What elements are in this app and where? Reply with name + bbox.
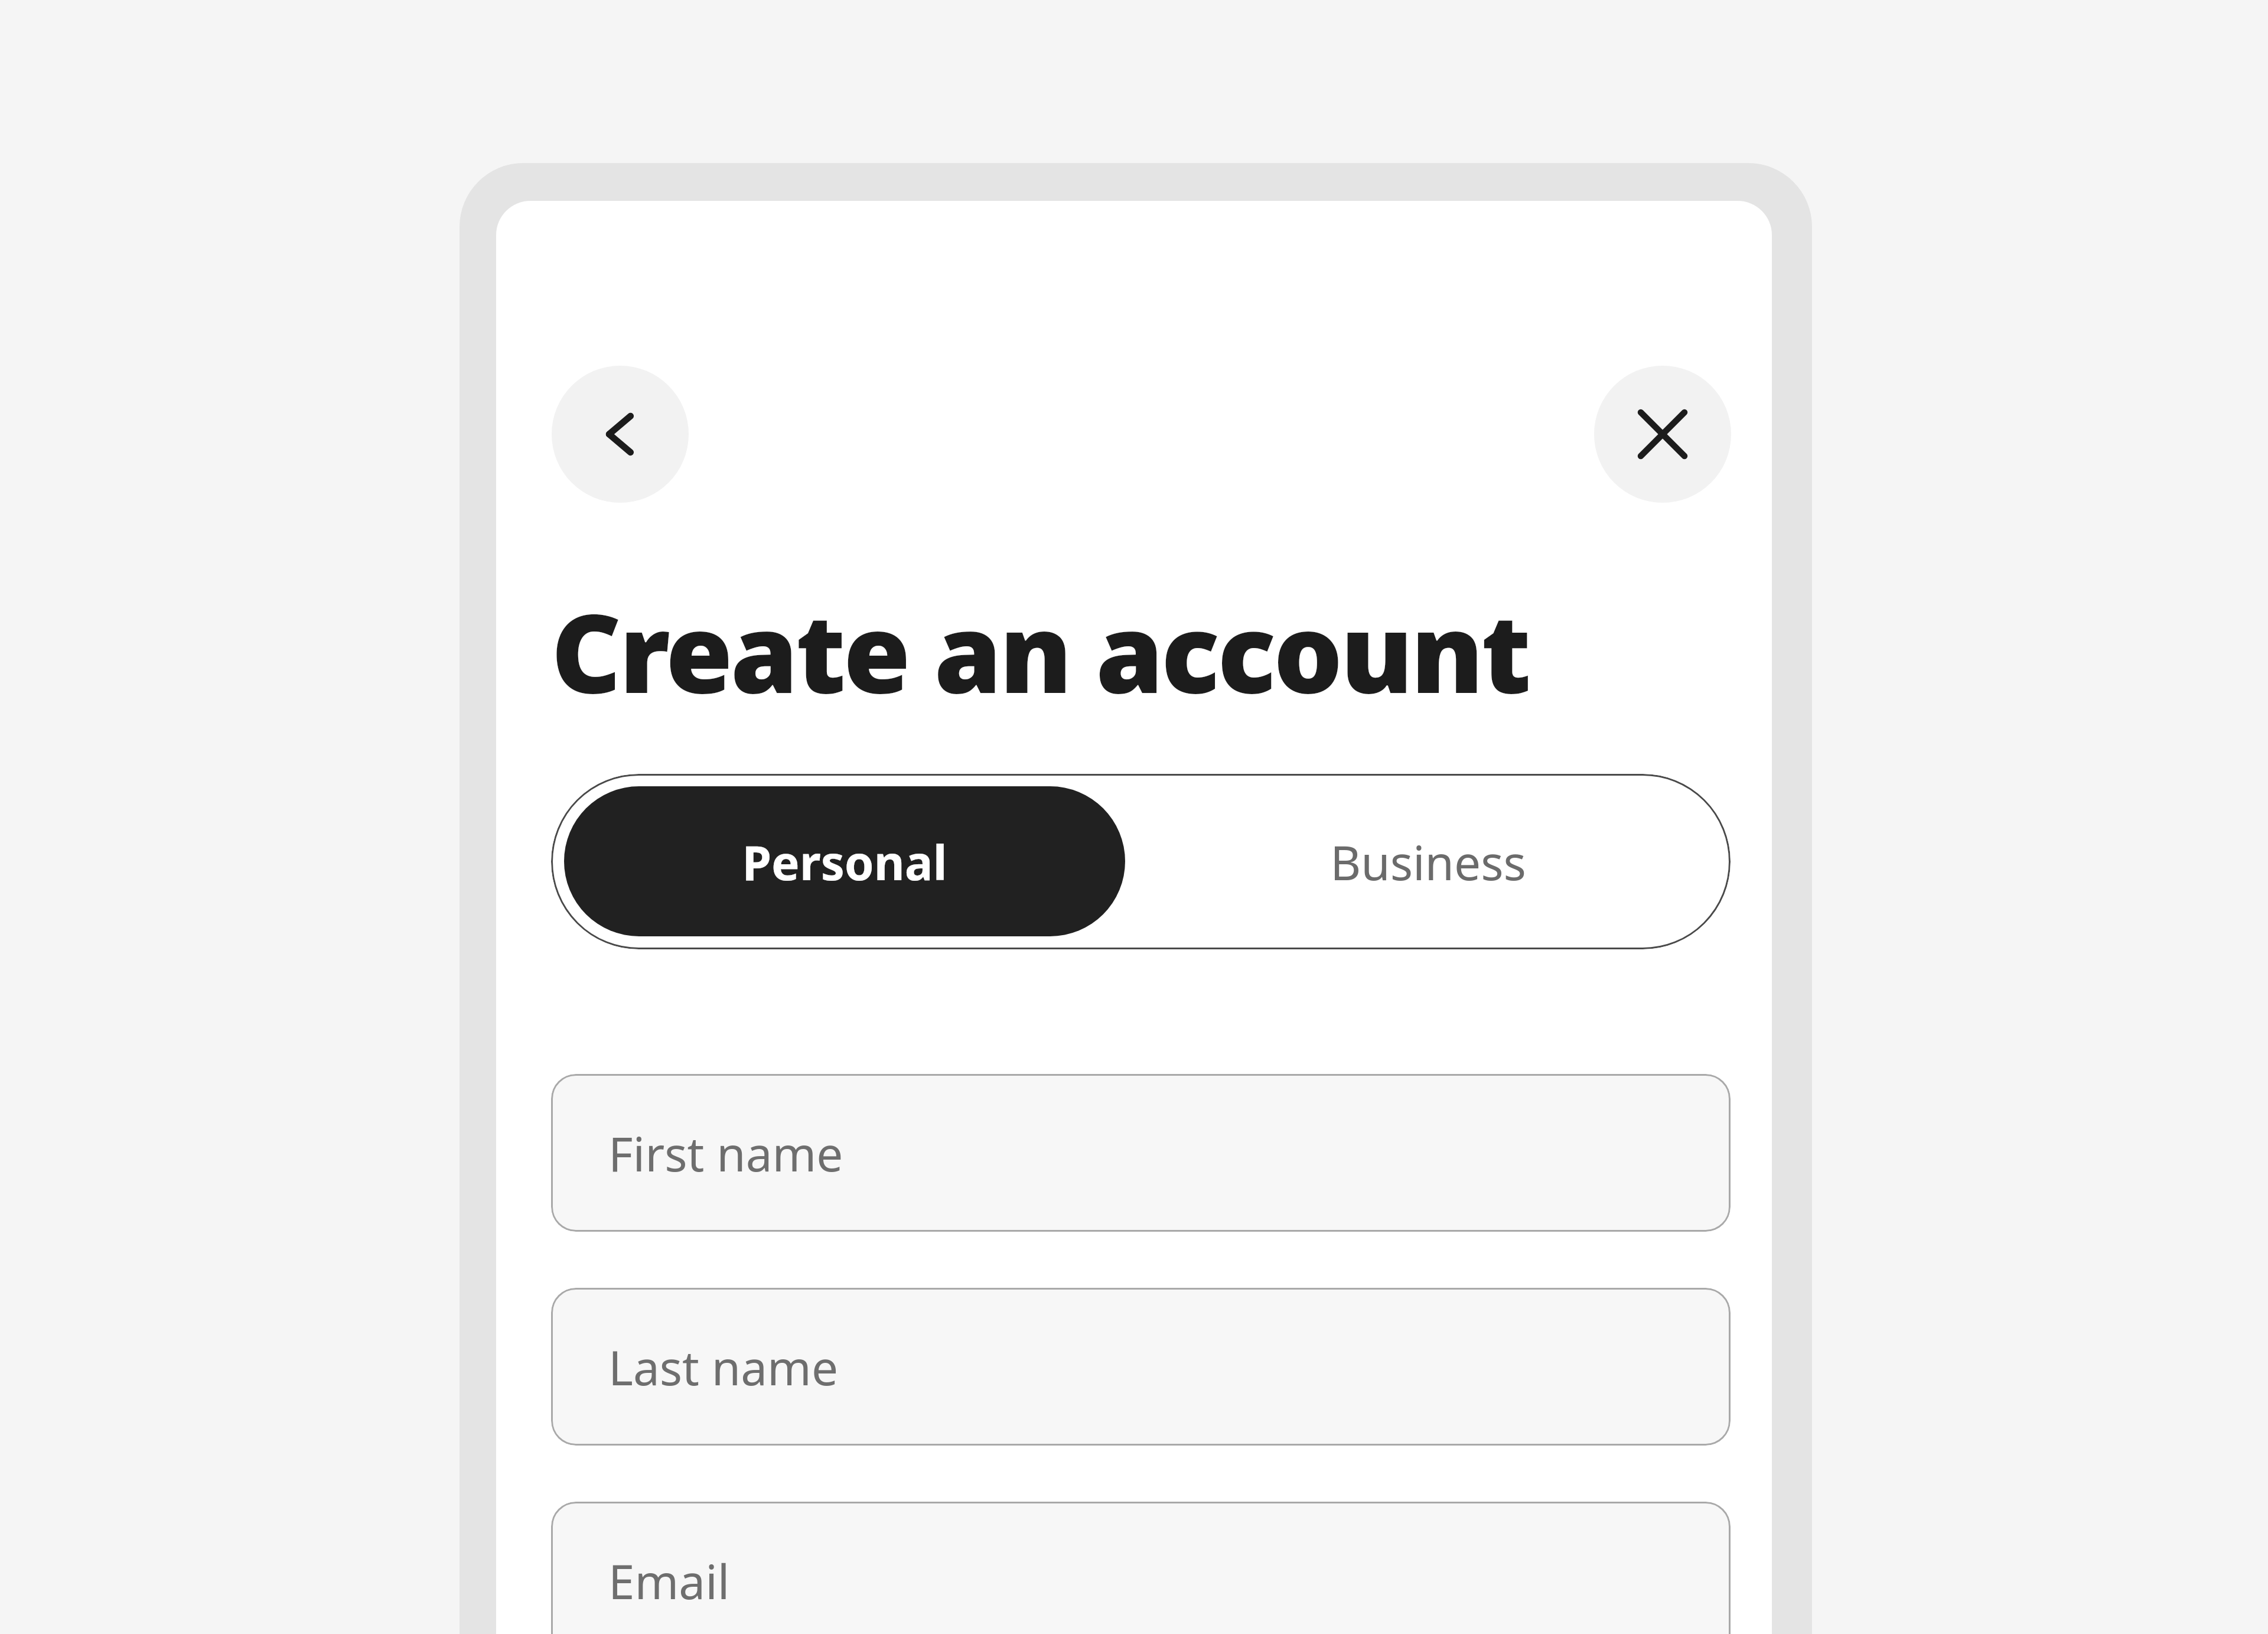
button[interactable]: Email	[551, 1502, 1731, 1634]
staticText: Business	[1330, 829, 1526, 894]
button[interactable]: Business	[1125, 774, 1731, 949]
staticText: First name	[608, 1121, 843, 1185]
button[interactable]: Close	[1594, 366, 1731, 503]
button[interactable]: First name	[551, 1074, 1731, 1232]
button[interactable]: Last name	[551, 1288, 1731, 1446]
staticText: Personal	[742, 829, 947, 894]
staticText: Create an account	[551, 577, 1529, 725]
button[interactable]: Personal	[564, 786, 1125, 936]
button[interactable]: Back	[552, 366, 689, 503]
staticText: Last name	[608, 1334, 839, 1399]
staticText: Email	[608, 1548, 730, 1613]
